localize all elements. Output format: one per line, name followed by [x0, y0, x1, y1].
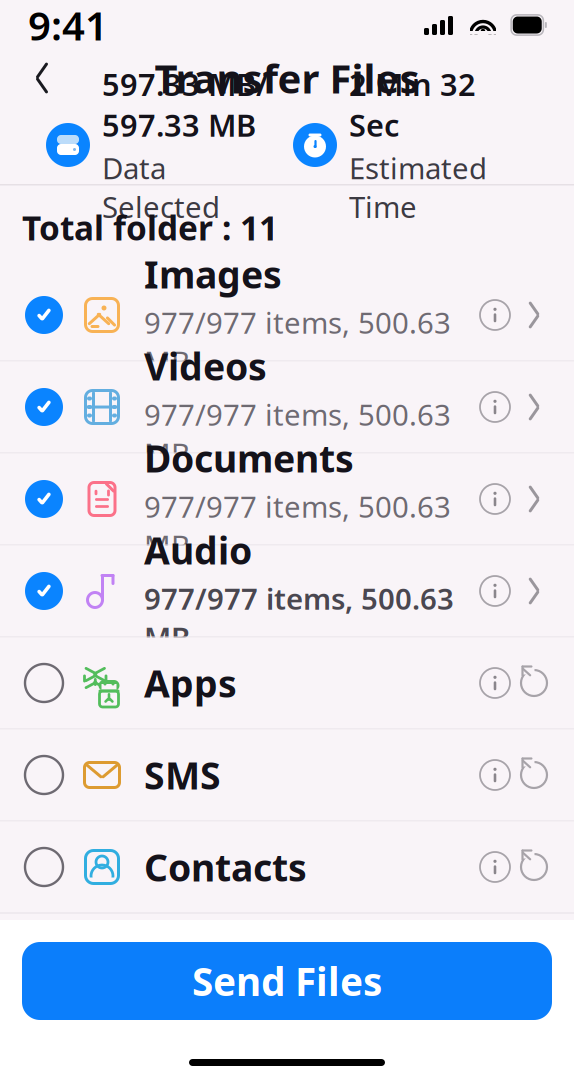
button[interactable]: Audio	[0, 545, 574, 636]
staticText: Apps	[144, 658, 237, 708]
staticText: Contacts	[144, 842, 307, 892]
staticText: 977/977 items, 500.63 MB	[144, 579, 454, 657]
staticText: SMS	[144, 750, 221, 800]
staticText: Audio	[144, 525, 252, 575]
button[interactable]: Apps	[0, 637, 574, 728]
button[interactable]: Videos	[0, 361, 574, 452]
staticText: 977/977 items, 500.63 MB	[144, 303, 451, 381]
button[interactable]: Send Files	[22, 942, 552, 1020]
staticText: 977/977 items, 500.63 MB	[144, 395, 451, 473]
button[interactable]: Back	[20, 56, 64, 100]
staticText: Send Files	[192, 955, 382, 1007]
staticText: Transfer Files	[154, 51, 419, 104]
staticText: Videos	[144, 341, 267, 391]
staticText: 2 Min 32 Sec	[349, 64, 476, 145]
staticText: Data Selected	[102, 148, 220, 226]
button[interactable]: Images	[0, 269, 574, 360]
button[interactable]: Contacts	[0, 821, 574, 912]
staticText: Estimated Time	[349, 148, 487, 226]
staticText: Images	[144, 249, 282, 299]
staticText: 9:41	[28, 0, 108, 51]
staticText: 977/977 items, 500.63 MB	[144, 487, 451, 565]
staticText: Total folder : 11	[22, 205, 278, 250]
button[interactable]: SMS	[0, 729, 574, 820]
staticText: Documents	[144, 433, 354, 483]
button[interactable]: Documents	[0, 453, 574, 544]
staticText: 597.33 MB/ 597.33 MB	[102, 64, 268, 145]
